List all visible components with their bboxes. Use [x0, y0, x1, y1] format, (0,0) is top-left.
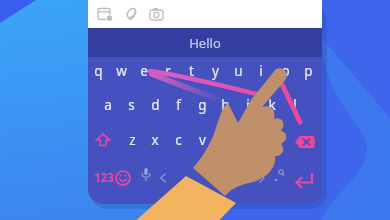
- button[interactable]: z: [102, 129, 162, 151]
- button[interactable]: u: [208, 60, 268, 82]
- staticText: c: [175, 131, 182, 149]
- button[interactable]: d: [125, 94, 185, 116]
- staticText: r: [165, 62, 171, 80]
- staticText: k: [268, 96, 276, 114]
- button[interactable]: i: [231, 60, 291, 82]
- button[interactable]: 123: [74, 167, 134, 189]
- button[interactable]: x: [125, 129, 185, 151]
- button[interactable]: t: [161, 60, 221, 82]
- staticText: s: [128, 96, 135, 114]
- staticText: g: [198, 96, 207, 114]
- staticText: u: [234, 62, 243, 80]
- staticText: Hello: [189, 34, 221, 52]
- staticText: x: [151, 131, 159, 149]
- button[interactable]: r: [138, 60, 198, 82]
- staticText: v: [199, 131, 206, 149]
- staticText: q: [94, 62, 103, 80]
- button[interactable]: k: [242, 94, 302, 116]
- staticText: z: [129, 131, 136, 149]
- staticText: y: [212, 62, 219, 80]
- staticText: h: [221, 96, 230, 114]
- staticText: p: [304, 62, 313, 80]
- button[interactable]: Hello: [0, 0, 390, 220]
- button[interactable]: e: [114, 60, 174, 82]
- button[interactable]: w: [91, 60, 151, 82]
- staticText: j: [246, 96, 250, 114]
- button[interactable]: b: [195, 129, 255, 151]
- button[interactable]: s: [101, 94, 161, 116]
- staticText: a: [104, 96, 112, 114]
- staticText: d: [151, 96, 160, 114]
- button[interactable]: c: [148, 129, 208, 151]
- staticText: e: [140, 62, 148, 80]
- staticText: i: [259, 62, 263, 80]
- button[interactable]: o: [255, 60, 315, 82]
- button[interactable]: h: [195, 94, 255, 116]
- staticText: t: [189, 62, 194, 80]
- staticText: l: [293, 96, 297, 114]
- staticText: w: [116, 62, 127, 80]
- button[interactable]: l: [265, 94, 325, 116]
- button[interactable]: f: [148, 94, 208, 116]
- button[interactable]: m: [242, 129, 302, 151]
- button[interactable]: v: [172, 129, 232, 151]
- button[interactable]: p: [278, 60, 338, 82]
- button[interactable]: q: [68, 60, 128, 82]
- staticText: o: [281, 62, 290, 80]
- button[interactable]: g: [172, 94, 232, 116]
- button[interactable]: y: [185, 60, 245, 82]
- button[interactable]: Hello: [175, 32, 235, 54]
- button[interactable]: j: [218, 94, 278, 116]
- staticText: f: [176, 96, 181, 114]
- staticText: 123: [94, 170, 114, 186]
- button[interactable]: a: [78, 94, 138, 116]
